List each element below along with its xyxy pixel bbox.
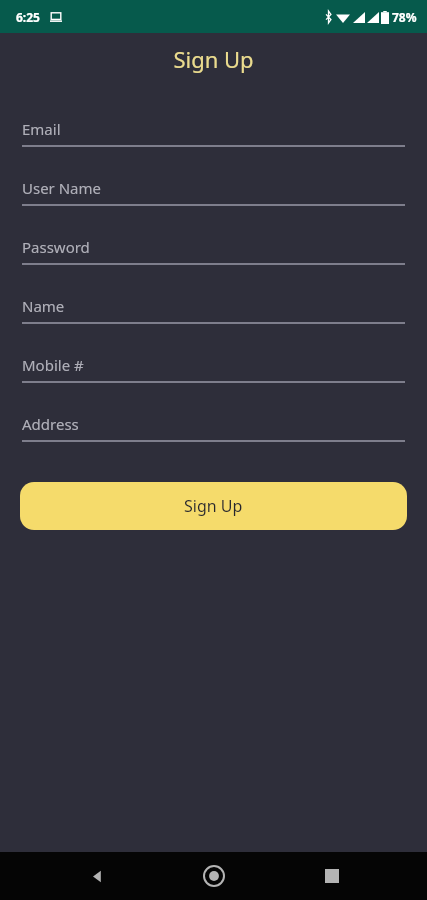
button[interactable]: Home	[192, 854, 236, 898]
button[interactable]: Sign Up	[20, 482, 407, 530]
button[interactable]: Mobile #	[22, 355, 405, 383]
staticText: Name	[22, 296, 65, 316]
staticText: Address	[22, 414, 79, 434]
button[interactable]: Address	[22, 414, 405, 442]
staticText: Email	[22, 119, 61, 139]
staticText: 6:25	[16, 9, 40, 25]
staticText: User Name	[22, 178, 102, 198]
staticText: Sign Up	[173, 44, 254, 74]
button[interactable]: Recent apps	[312, 856, 352, 896]
button[interactable]: Email	[22, 119, 405, 147]
staticText: 78%	[392, 9, 417, 25]
staticText: Mobile #	[22, 355, 84, 375]
staticText: Sign Up	[184, 495, 243, 517]
staticText: Password	[22, 237, 90, 257]
button[interactable]: Back	[77, 856, 117, 896]
button[interactable]: Password	[22, 237, 405, 265]
button[interactable]: Name	[22, 296, 405, 324]
button[interactable]: User Name	[22, 178, 405, 206]
